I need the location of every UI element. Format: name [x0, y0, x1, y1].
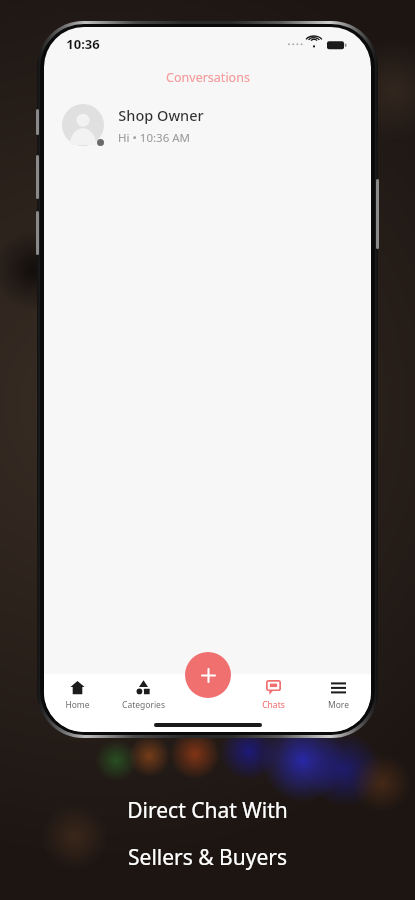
staticText: Conversations [166, 69, 250, 86]
staticText: Chats [262, 699, 285, 711]
button[interactable]: Chats [241, 680, 306, 732]
button[interactable]: Home [44, 680, 110, 732]
staticText: More [328, 699, 349, 711]
staticText: Categories [122, 699, 165, 711]
staticText: Sellers & Buyers [128, 843, 287, 872]
staticText: 10:36 [66, 35, 100, 53]
staticText: Hi • 10:36 AM [118, 130, 190, 146]
button[interactable]: Categories [110, 680, 176, 732]
staticText: Shop Owner [118, 105, 204, 125]
staticText: Direct Chat With [127, 796, 288, 825]
staticText: Home [65, 699, 90, 711]
button[interactable]: New chat [185, 652, 231, 698]
button[interactable]: More [306, 680, 371, 732]
button[interactable]: Shop Owner [44, 100, 371, 150]
